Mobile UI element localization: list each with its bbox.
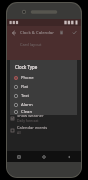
button[interactable]: Clock style xyxy=(7,100,81,112)
button[interactable]: Flat xyxy=(10,82,77,91)
staticText: Calendar events xyxy=(17,125,48,130)
staticText: Analog xyxy=(17,106,29,111)
staticText: Clock Type xyxy=(15,64,38,70)
staticText: Text xyxy=(21,93,30,99)
staticText: All xyxy=(17,130,21,135)
button[interactable]: Calendar events xyxy=(7,124,81,136)
button[interactable]: Home xyxy=(31,151,56,162)
staticText: Flat xyxy=(21,84,29,90)
staticText: Daily forecast xyxy=(17,118,39,123)
staticText: Card layout xyxy=(20,42,42,47)
button[interactable]: Alarm xyxy=(10,100,77,109)
staticText: Clock & Calendar xyxy=(20,30,55,36)
button[interactable]: Back xyxy=(56,151,81,162)
staticText: Clock style xyxy=(17,101,37,106)
staticText: Show weather xyxy=(17,113,44,118)
button[interactable]: Phone xyxy=(10,73,77,82)
button[interactable]: Delete xyxy=(55,26,68,39)
button[interactable]: Recents xyxy=(7,151,31,162)
button[interactable]: Done xyxy=(68,26,81,39)
button[interactable]: Text xyxy=(10,91,77,100)
staticText: Alarm xyxy=(21,102,33,108)
staticText: Clean xyxy=(21,109,33,115)
button[interactable]: Show weather xyxy=(7,112,81,124)
staticText: Phone xyxy=(21,75,34,81)
button[interactable]: Navigate up xyxy=(7,26,20,39)
button[interactable]: Clean xyxy=(10,109,77,115)
